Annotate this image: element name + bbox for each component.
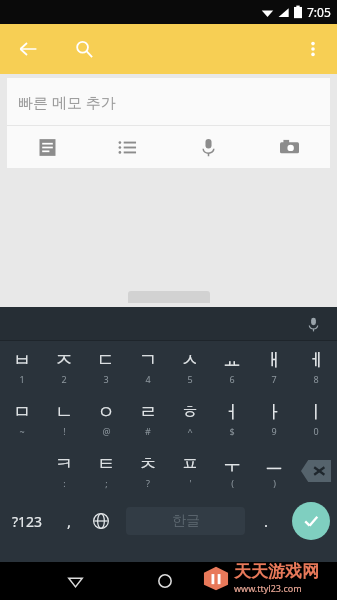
button[interactable]: ㅅ — [169, 341, 211, 393]
staticText: ㅛ — [223, 349, 241, 372]
staticText: ㅎ — [181, 401, 199, 424]
button[interactable]: ?123 — [4, 501, 50, 541]
button[interactable]: Search — [66, 31, 102, 67]
staticText: ㅅ — [181, 349, 199, 372]
button[interactable]: Voice note — [168, 126, 249, 168]
button[interactable]: ㅇ — [85, 393, 127, 445]
button[interactable]: Home — [148, 564, 182, 598]
staticText: ㅜ — [223, 453, 241, 476]
staticText: 7 — [271, 373, 277, 385]
staticText: ' — [189, 477, 192, 489]
staticText: ?123 — [12, 512, 43, 531]
button[interactable]: 빠른 메모 추가 — [7, 78, 330, 125]
staticText: ! — [63, 425, 66, 437]
staticText: , — [67, 511, 72, 531]
button[interactable]: ㅜ — [211, 445, 253, 497]
staticText: ㅡ — [265, 453, 283, 476]
staticText: ㅓ — [223, 401, 241, 424]
button[interactable]: ㅛ — [211, 341, 253, 393]
button[interactable]: Period — [252, 501, 280, 541]
staticText: $ — [229, 425, 235, 437]
staticText: ㅊ — [139, 453, 157, 476]
button[interactable]: Voice input — [299, 310, 327, 338]
staticText: www.ttyl23.com — [234, 582, 302, 594]
button[interactable]: ㅏ — [253, 393, 295, 445]
staticText: ㅂ — [13, 349, 31, 372]
staticText: 한글 — [172, 512, 200, 530]
button[interactable]: ㅊ — [127, 445, 169, 497]
button[interactable]: Camera — [249, 126, 330, 168]
staticText: 0 — [313, 425, 319, 437]
staticText: ~ — [19, 425, 25, 437]
staticText: 4 — [145, 373, 151, 385]
staticText: ㅇ — [97, 401, 115, 424]
staticText: ) — [273, 477, 276, 489]
staticText: ㅈ — [55, 349, 73, 372]
staticText: ; — [105, 477, 108, 489]
staticText: 5 — [187, 373, 193, 385]
button[interactable]: ㅈ — [43, 341, 85, 393]
staticText: ㅣ — [307, 401, 325, 424]
staticText: 2 — [61, 373, 67, 385]
staticText: ㅍ — [181, 453, 199, 476]
staticText: : — [63, 477, 66, 489]
button[interactable]: ㅡ — [253, 445, 295, 497]
button[interactable]: ㄷ — [85, 341, 127, 393]
staticText: ㄷ — [97, 349, 115, 372]
button[interactable]: ㅋ — [43, 445, 85, 497]
button[interactable]: Comma — [54, 501, 84, 541]
staticText: ㅏ — [265, 401, 283, 424]
staticText: ( — [231, 477, 234, 489]
button[interactable]: Backspace — [295, 445, 337, 497]
staticText: ㅋ — [55, 453, 73, 476]
staticText: # — [145, 425, 151, 437]
button[interactable]: ㅐ — [253, 341, 295, 393]
staticText: @ — [102, 425, 111, 437]
button[interactable]: ㅎ — [169, 393, 211, 445]
staticText: 9 — [271, 425, 277, 437]
button[interactable]: Note — [7, 126, 87, 168]
staticText: ㄴ — [55, 401, 73, 424]
staticText: 天天游戏网 — [234, 561, 319, 582]
button[interactable]: ㅍ — [169, 445, 211, 497]
button[interactable]: ㄹ — [127, 393, 169, 445]
button[interactable]: More options — [295, 31, 331, 67]
button[interactable]: Change language — [86, 506, 116, 536]
staticText: ㅐ — [265, 349, 283, 372]
staticText: ㄱ — [139, 349, 157, 372]
button[interactable]: ㄱ — [127, 341, 169, 393]
button[interactable]: Back — [10, 31, 46, 67]
button[interactable]: 한글 — [126, 507, 245, 535]
button[interactable]: Done — [292, 502, 330, 540]
staticText: ㅌ — [97, 453, 115, 476]
button[interactable]: ㅣ — [295, 393, 337, 445]
button[interactable]: Back — [58, 564, 92, 598]
staticText: 3 — [103, 373, 109, 385]
staticText: 1 — [19, 373, 25, 385]
button[interactable]: ㅔ — [295, 341, 337, 393]
staticText: ㅁ — [13, 401, 31, 424]
button[interactable]: ㅌ — [85, 445, 127, 497]
staticText: ㅔ — [307, 349, 325, 372]
staticText: 6 — [229, 373, 235, 385]
staticText: 8 — [313, 373, 319, 385]
staticText: 빠른 메모 추가 — [18, 92, 116, 112]
staticText: ㄹ — [139, 401, 157, 424]
button[interactable]: ㅁ — [0, 393, 43, 445]
button[interactable]: ㅓ — [211, 393, 253, 445]
staticText: ^ — [187, 425, 193, 437]
button[interactable]: ㄴ — [43, 393, 85, 445]
button[interactable]: ㅂ — [0, 341, 43, 393]
staticText: 7:05 — [307, 4, 331, 20]
staticText: . — [264, 511, 269, 531]
staticText: ? — [146, 477, 150, 489]
button[interactable]: List — [87, 126, 168, 168]
